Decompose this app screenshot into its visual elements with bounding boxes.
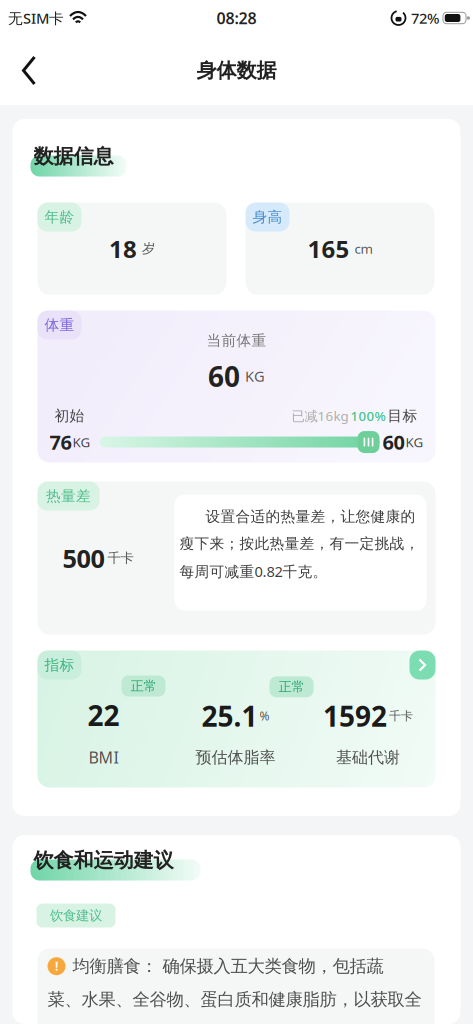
staticText: 500 xyxy=(62,541,104,575)
button[interactable] xyxy=(357,431,379,453)
staticText: 年龄 xyxy=(44,208,74,226)
button[interactable]: 指标 xyxy=(37,651,435,788)
staticText: 饮食和运动建议 xyxy=(33,848,173,873)
staticText: KG xyxy=(405,433,423,451)
staticText: 基础代谢 xyxy=(336,747,400,767)
staticText: 岁 xyxy=(142,240,155,257)
staticText: 22 xyxy=(87,697,119,734)
staticText: 100% xyxy=(350,407,385,425)
staticText: 目标 xyxy=(387,407,417,425)
staticText: 1592 xyxy=(323,697,387,735)
button[interactable]: 身高 xyxy=(245,203,434,295)
staticText: 正常 xyxy=(130,678,156,694)
staticText: 热量差 xyxy=(46,487,91,505)
staticText: 饮食建议 xyxy=(50,907,102,924)
staticText: 指标 xyxy=(44,656,74,674)
staticText: 当前体重 xyxy=(206,332,266,350)
staticText: 正常 xyxy=(278,679,304,695)
staticText: 身体数据 xyxy=(196,58,276,83)
staticText: 体重 xyxy=(44,316,74,334)
staticText: 初始 xyxy=(54,407,84,425)
staticText: 无SIM卡 xyxy=(8,8,64,28)
staticText: 瘦下来；按此热量差，有一定挑战， xyxy=(179,535,419,553)
staticText: 60 xyxy=(208,358,240,395)
staticText: 每周可减重0.82千克。 xyxy=(179,562,327,581)
staticText: 千卡 xyxy=(389,709,413,723)
staticText: 18 xyxy=(109,233,137,264)
staticText: ! xyxy=(55,958,58,974)
staticText: 已减16kg xyxy=(291,407,348,425)
staticText: 165 xyxy=(307,233,349,264)
staticText: 25.1 xyxy=(201,697,257,735)
staticText: 身高 xyxy=(252,208,282,226)
staticText: KG xyxy=(245,366,265,386)
button[interactable]: 年龄 xyxy=(37,203,226,295)
button[interactable] xyxy=(0,55,48,85)
staticText: 数据信息 xyxy=(33,144,113,169)
staticText: KG xyxy=(72,433,90,451)
staticText: 08:28 xyxy=(216,7,256,29)
staticText: 72% xyxy=(411,8,439,28)
staticText: cm xyxy=(354,240,372,257)
staticText: % xyxy=(259,708,269,724)
staticText: 60 xyxy=(382,429,404,455)
staticText: 76 xyxy=(49,429,71,455)
staticText: 均衡膳食： 确保摄入五大类食物，包括蔬 xyxy=(72,956,383,977)
staticText: 菜、水果、全谷物、蛋白质和健康脂肪，以获取全 xyxy=(47,989,421,1010)
staticText: BMI xyxy=(88,747,118,768)
staticText: 预估体脂率 xyxy=(195,747,275,767)
staticText: 设置合适的热量差，让您健康的 xyxy=(205,508,415,526)
staticText: 千卡 xyxy=(107,550,133,566)
